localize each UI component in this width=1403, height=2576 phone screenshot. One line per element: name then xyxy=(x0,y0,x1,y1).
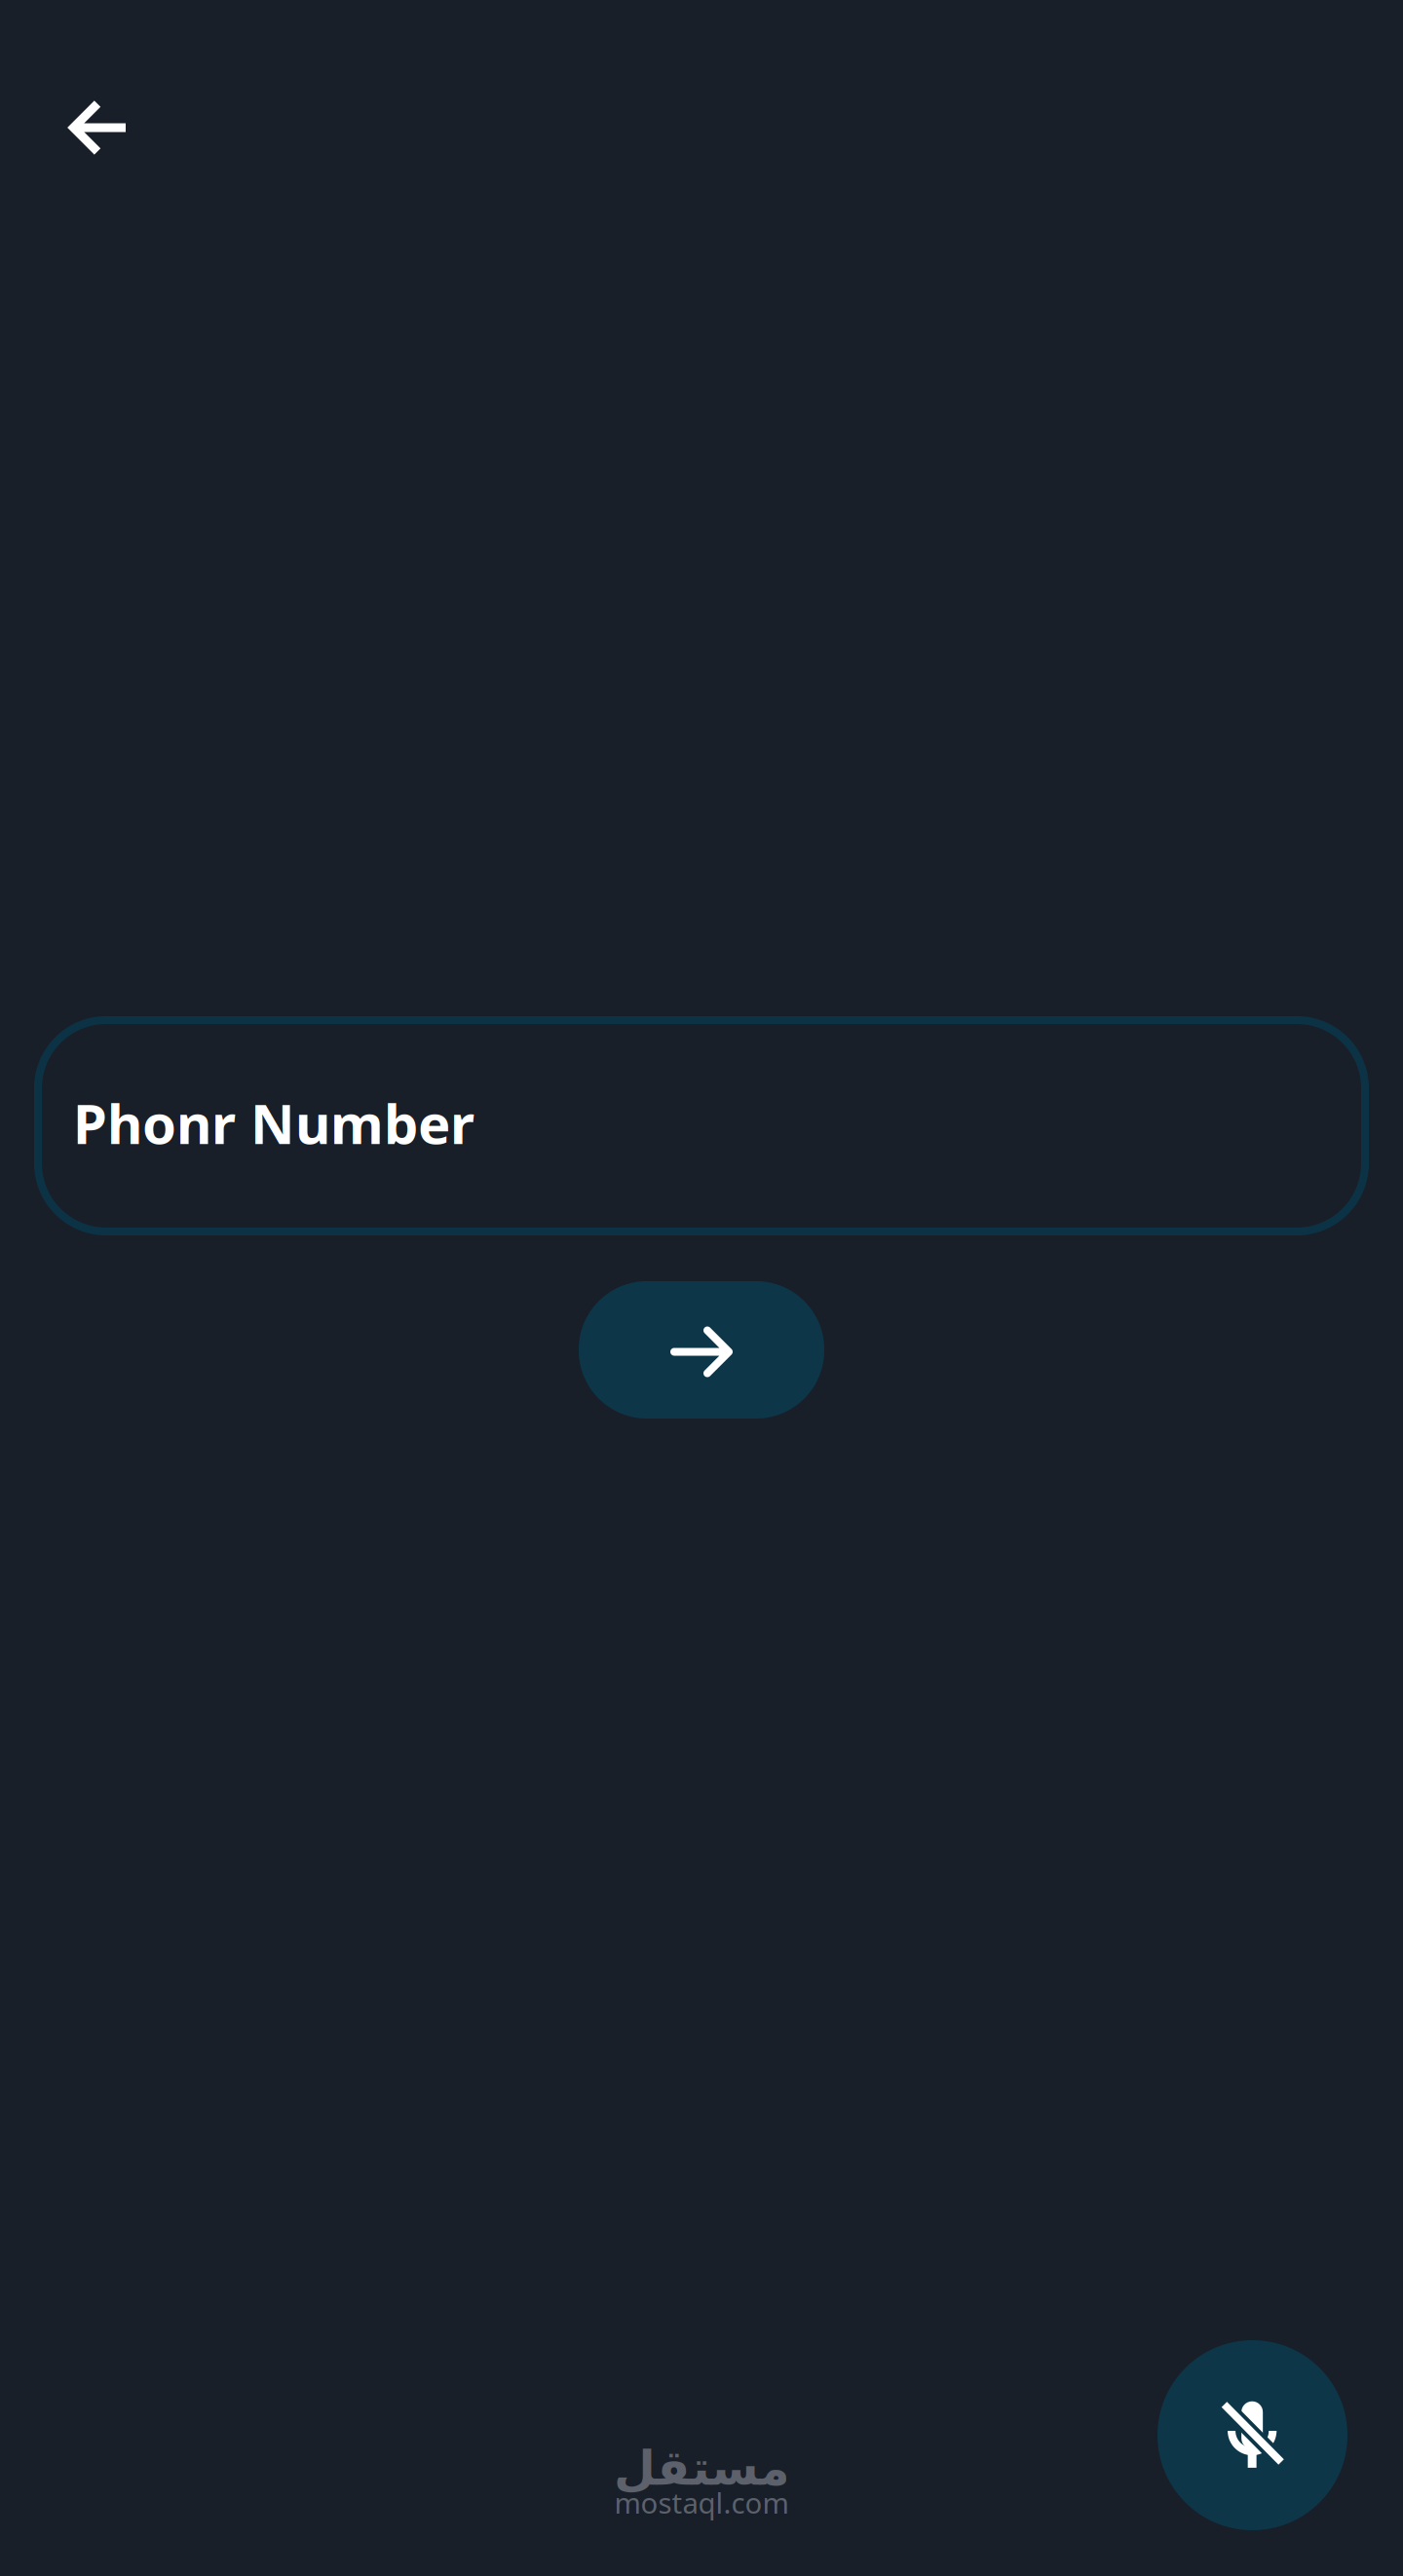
button[interactable]: Mute microphone xyxy=(1157,2340,1347,2530)
button[interactable]: Back xyxy=(43,73,152,182)
button[interactable]: Continue xyxy=(579,1281,824,1419)
staticText: Phonr Number xyxy=(73,1087,474,1159)
staticText: mostaql.com xyxy=(614,2483,789,2521)
staticText: مستقل xyxy=(613,2441,790,2495)
